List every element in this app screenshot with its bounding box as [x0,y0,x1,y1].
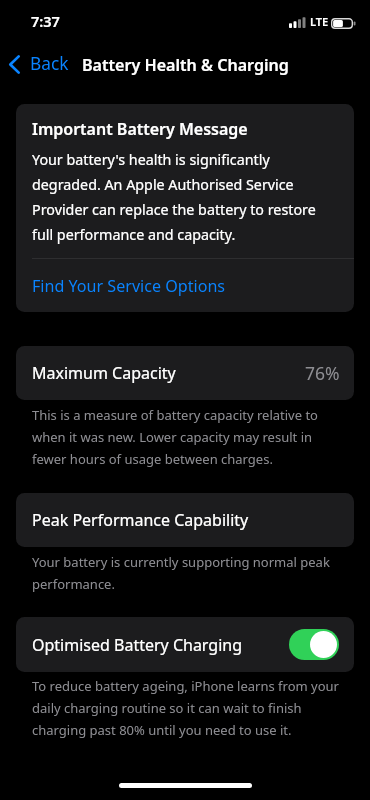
staticText: Maximum Capacity [32,362,176,384]
button[interactable]: Peak Performance Capability [16,493,354,547]
staticText: Peak Performance Capability [32,509,249,531]
staticText: This is a measure of battery capacity re… [32,406,342,468]
staticText: Important Battery Message [32,118,248,140]
button[interactable]: Optimised Battery Charging toggle, on [289,629,339,660]
staticText: 7:37 [31,11,60,31]
button[interactable]: Optimised Battery Charging [16,617,354,672]
staticText: Your battery's health is significantly d… [32,150,332,244]
button[interactable]: Find Your Service Options [16,259,354,312]
staticText: Back [30,52,69,76]
staticText: Find Your Service Options [32,275,226,297]
button[interactable]: Maximum Capacity [16,346,354,400]
staticText: 76% [305,361,340,385]
staticText: Battery Health & Charging [82,54,289,76]
button[interactable]: Back [1,46,77,82]
staticText: LTE [310,14,329,29]
staticText: Your battery is currently supporting nor… [32,553,342,593]
staticText: Optimised Battery Charging [32,634,243,656]
staticText: To reduce battery ageing, iPhone learns … [32,677,342,739]
